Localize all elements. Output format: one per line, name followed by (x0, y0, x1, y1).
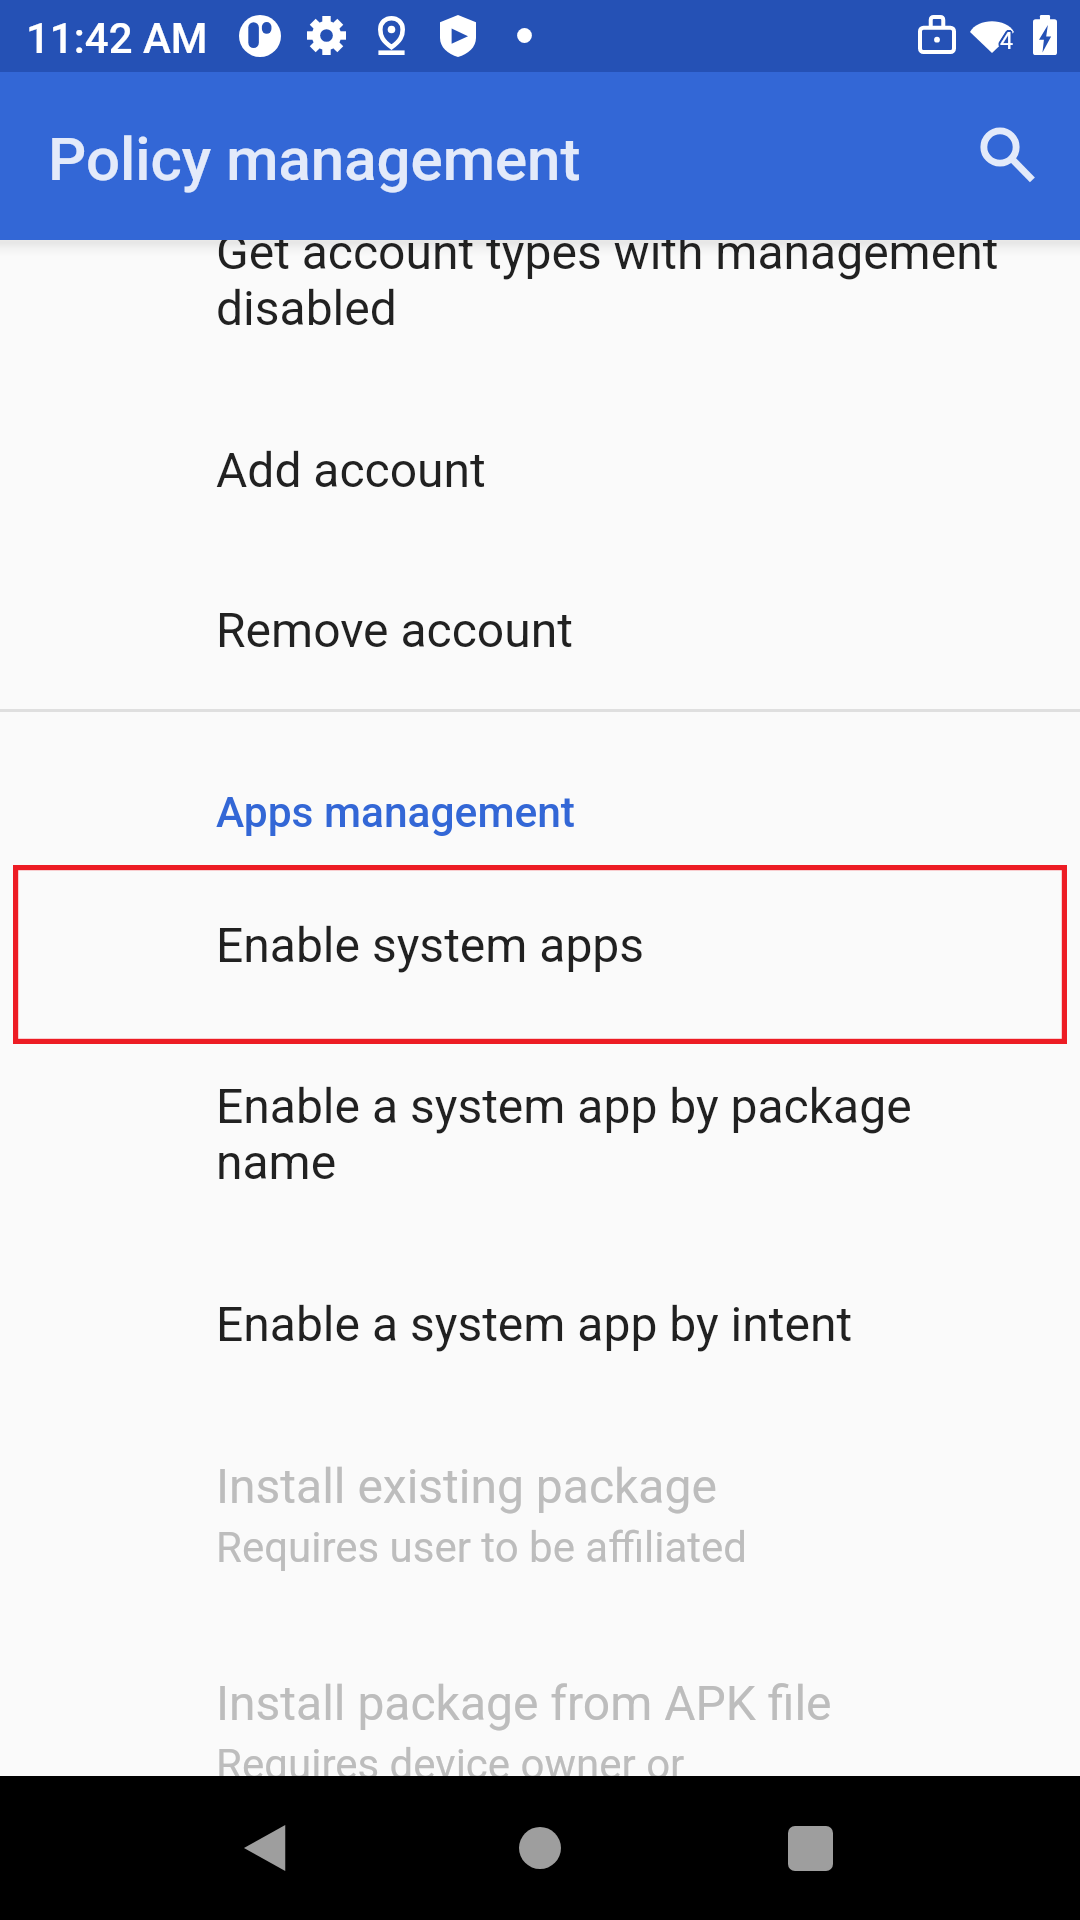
staticText: 4 (999, 26, 1013, 53)
staticText: 4 (1000, 29, 1014, 56)
button[interactable]: Home (468, 1776, 612, 1920)
staticText: 4 (1000, 26, 1014, 53)
staticText: 4 (999, 28, 1013, 55)
staticText: Apps management (216, 788, 575, 838)
button[interactable]: Back (195, 1776, 339, 1920)
button[interactable] (0, 240, 1080, 387)
staticText: Add account (216, 442, 486, 498)
staticText: Requires user to be affiliated (216, 1523, 747, 1572)
staticText: name (216, 1134, 337, 1190)
staticText: disabled (216, 280, 397, 336)
staticText: 4 (1001, 27, 1015, 54)
staticText: 4 (1002, 27, 1016, 54)
staticText: 4 (1001, 26, 1015, 53)
staticText: 4 (1000, 27, 1014, 54)
button[interactable] (0, 548, 1080, 709)
staticText: 4 (999, 29, 1013, 56)
staticText: Install package from APK file (216, 1675, 832, 1731)
button[interactable] (0, 387, 1080, 548)
staticText: 4 (998, 26, 1012, 53)
staticText: Enable a system app by intent (216, 1296, 853, 1352)
staticText: Enable system apps (216, 917, 645, 973)
staticText: Enable a system app by package (216, 1078, 912, 1134)
staticText: 4 (998, 27, 1012, 54)
staticText: Get account types with management (216, 240, 999, 280)
staticText: Policy management (48, 124, 581, 194)
staticText: 4 (1002, 26, 1016, 53)
button[interactable] (0, 865, 1080, 1044)
button[interactable] (0, 1422, 1080, 1641)
button[interactable] (0, 1641, 1080, 1776)
staticText: 4 (1001, 29, 1015, 56)
staticText: Install existing package (216, 1458, 717, 1514)
staticText: 4 (1000, 25, 1014, 52)
staticText: 4 (999, 25, 1013, 52)
staticText: 11:42 AM (26, 14, 208, 63)
staticText: 4 (998, 28, 1012, 55)
staticText: 4 (1000, 27, 1014, 54)
staticText: 4 (1001, 25, 1015, 52)
button[interactable] (0, 1044, 1080, 1261)
staticText: 4 (1002, 28, 1016, 55)
button[interactable]: Search (940, 87, 1060, 207)
staticText: 4 (1000, 28, 1014, 55)
button[interactable]: Recents (738, 1776, 882, 1920)
staticText: Remove account (216, 602, 573, 658)
staticText: 4 (1001, 28, 1015, 55)
button[interactable] (0, 1261, 1080, 1422)
staticText: Requires device owner or (216, 1740, 685, 1776)
staticText: 4 (999, 27, 1013, 54)
